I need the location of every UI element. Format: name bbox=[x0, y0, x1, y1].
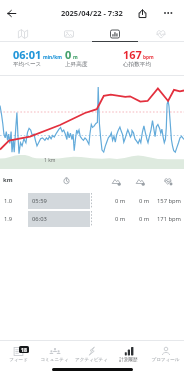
button[interactable]: Back bbox=[3, 5, 19, 21]
staticText: 157 bpm bbox=[157, 197, 182, 205]
staticText: 0 m bbox=[139, 215, 150, 223]
staticText: 2025/04/22 - 7:32 bbox=[61, 8, 123, 18]
staticText: 0 m bbox=[139, 197, 150, 205]
button[interactable]: コミュニティ bbox=[36, 341, 73, 369]
button[interactable]: Charts bbox=[92, 26, 138, 41]
staticText: 平均ペース bbox=[13, 61, 42, 68]
button[interactable]: 18 bbox=[0, 341, 36, 369]
button[interactable]: Photos bbox=[46, 26, 92, 41]
button[interactable]: 1.0 bbox=[0, 193, 184, 209]
staticText: bpm bbox=[143, 54, 154, 61]
staticText: フィード bbox=[9, 357, 28, 363]
staticText: 06:03 bbox=[32, 215, 47, 223]
staticText: 0 m bbox=[115, 215, 126, 223]
staticText: 上昇高度 bbox=[65, 61, 88, 68]
staticText: m bbox=[73, 54, 78, 61]
staticText: 1.9 bbox=[4, 215, 13, 223]
staticText: km bbox=[3, 176, 13, 184]
staticText: 171 bpm bbox=[157, 215, 182, 223]
staticText: 1.0 bbox=[4, 197, 13, 205]
staticText: 心拍数平均 bbox=[123, 61, 151, 68]
button[interactable]: Share bbox=[134, 5, 150, 21]
button[interactable]: Heart rate bbox=[138, 26, 184, 41]
staticText: コミュニティ bbox=[40, 357, 69, 363]
staticText: 0 bbox=[65, 47, 72, 62]
staticText: アクティビティ bbox=[75, 357, 108, 363]
staticText: 18 bbox=[21, 346, 27, 353]
button[interactable]: アクティビティ bbox=[73, 341, 110, 369]
button[interactable]: Map bbox=[0, 26, 46, 41]
staticText: プロフィール bbox=[151, 357, 180, 363]
staticText: 06:01 bbox=[13, 47, 42, 62]
button[interactable]: 計測履歴 bbox=[110, 341, 147, 369]
staticText: min/km bbox=[43, 54, 62, 61]
staticText: 0 m bbox=[115, 197, 126, 205]
button[interactable]: More options bbox=[160, 5, 176, 21]
staticText: 計測履歴 bbox=[119, 357, 138, 363]
button[interactable]: 1.9 bbox=[0, 211, 184, 227]
staticText: 05:59 bbox=[32, 197, 47, 205]
staticText: 167 bbox=[123, 47, 142, 62]
button[interactable]: プロフィール bbox=[147, 341, 184, 369]
staticText: 1 km bbox=[44, 157, 56, 164]
